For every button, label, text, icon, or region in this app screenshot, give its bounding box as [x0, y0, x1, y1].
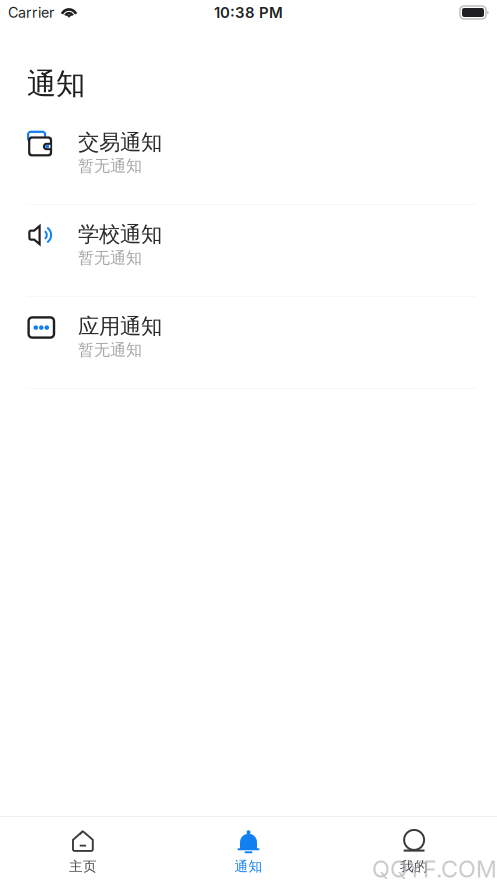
staticText: 暂无通知: [78, 156, 142, 176]
button[interactable]: 我的: [331, 817, 497, 883]
staticText: 暂无通知: [78, 340, 142, 360]
staticText: 应用通知: [78, 313, 162, 340]
button[interactable]: 学校通知: [0, 219, 497, 311]
staticText: 通知: [234, 858, 262, 875]
button[interactable]: 通知: [166, 817, 331, 883]
staticText: 学校通知: [78, 221, 162, 248]
staticText: 我的: [400, 858, 428, 875]
staticText: 暂无通知: [78, 248, 142, 268]
button[interactable]: 主页: [0, 817, 166, 883]
staticText: QQYF.COM: [372, 855, 497, 883]
button[interactable]: 交易通知: [0, 127, 497, 219]
staticText: 通知: [27, 65, 85, 102]
staticText: 主页: [69, 858, 97, 875]
staticText: 交易通知: [78, 129, 162, 156]
staticText: Carrier: [8, 4, 54, 21]
staticText: 10:38 PM: [214, 3, 283, 22]
button[interactable]: 应用通知: [0, 311, 497, 403]
